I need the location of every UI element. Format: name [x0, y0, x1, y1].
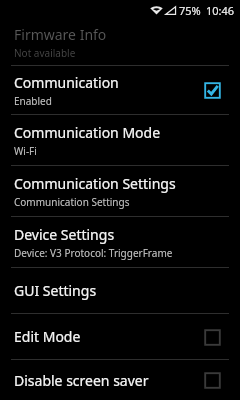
staticText: Not available [14, 46, 76, 60]
staticText: Communication Mode [14, 123, 161, 142]
staticText: Edit Mode [14, 327, 81, 346]
staticText: 75% [179, 3, 201, 18]
staticText: Firmware Info [14, 25, 107, 44]
button[interactable]: Device Settings [0, 217, 240, 267]
staticText: 10:46 [206, 3, 235, 18]
staticText: Device: V3 Protocol: TriggerFrame [14, 246, 173, 260]
button[interactable]: Communication [0, 66, 240, 114]
staticText: Device Settings [14, 225, 115, 244]
button[interactable]: Firmware Info [0, 20, 240, 65]
staticText: Disable screen saver [14, 371, 149, 390]
button[interactable]: Communication Mode [0, 115, 240, 165]
button[interactable]: Disable screen saver [0, 360, 240, 400]
staticText: Communication [14, 73, 119, 92]
staticText: GUI Settings [14, 281, 97, 300]
staticText: Communication Settings [14, 195, 130, 209]
staticText: Communication Settings [14, 174, 176, 193]
button[interactable]: Communication Settings [0, 166, 240, 216]
other: Toggle Disable screen saver [198, 366, 226, 394]
button[interactable]: GUI Settings [0, 268, 240, 313]
button[interactable]: Edit Mode [0, 314, 240, 359]
staticText: Enabled [14, 94, 52, 108]
other: Toggle Edit Mode [198, 323, 226, 351]
staticText: Wi-Fi [14, 144, 37, 158]
other: Toggle Communication [198, 76, 226, 104]
